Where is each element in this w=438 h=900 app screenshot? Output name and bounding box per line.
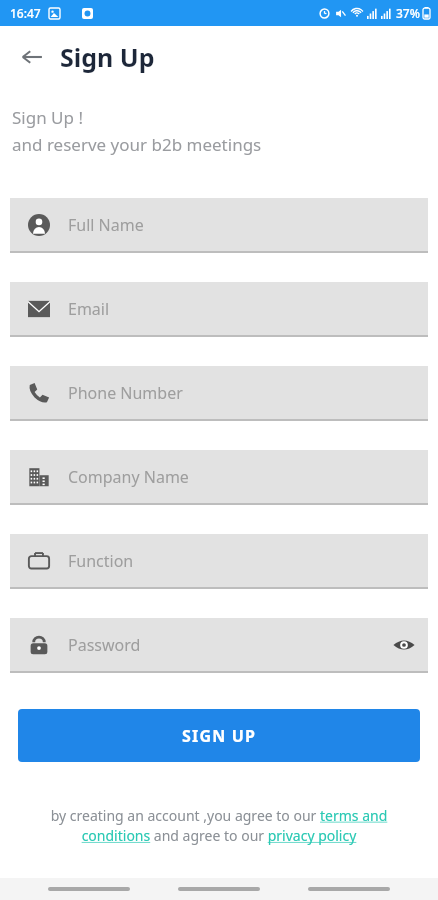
staticText: Sign Up — [60, 40, 155, 74]
button[interactable]: Navigation — [178, 882, 260, 896]
staticText: by creating an account ,you agree to our… — [18, 806, 420, 845]
button[interactable]: Email — [10, 282, 428, 335]
button[interactable]: Company Name — [10, 450, 428, 503]
staticText: Email — [68, 298, 110, 320]
button[interactable]: Navigation — [308, 882, 390, 896]
button[interactable]: Function — [10, 534, 428, 587]
staticText: Company Name — [68, 466, 189, 488]
staticText: 37% — [396, 5, 420, 21]
button[interactable]: by creating an account ,you agree to our… — [18, 806, 420, 845]
button[interactable]: Show password — [384, 625, 424, 665]
button[interactable]: Full Name — [10, 198, 428, 251]
button[interactable]: Password — [10, 618, 428, 671]
button[interactable]: Phone Number — [10, 366, 428, 419]
staticText: SIGN UP — [182, 725, 257, 747]
staticText: Sign Up ! — [12, 106, 83, 129]
staticText: 16:47 — [10, 5, 41, 21]
staticText: Full Name — [68, 214, 144, 236]
staticText: Function — [68, 550, 134, 572]
button[interactable]: SIGN UP — [18, 709, 420, 762]
staticText: Password — [68, 634, 141, 656]
staticText: Phone Number — [68, 382, 183, 404]
button[interactable]: Navigation — [48, 882, 130, 896]
button[interactable]: Back — [12, 37, 52, 77]
staticText: and reserve your b2b meetings — [12, 133, 262, 156]
